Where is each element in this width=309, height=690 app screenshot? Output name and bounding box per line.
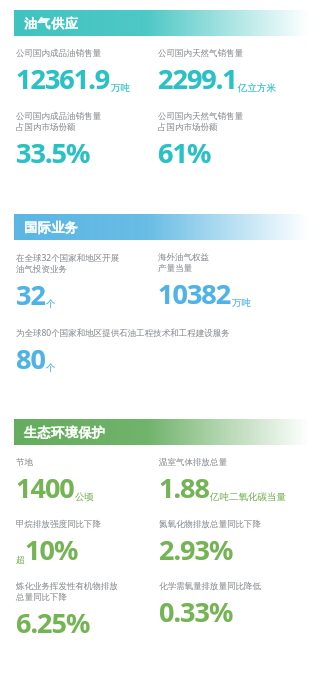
staticText: 1.88 xyxy=(159,469,209,506)
staticText: 2.93% xyxy=(159,531,233,568)
button[interactable]: 在全球32个国家和地区开展 xyxy=(16,252,120,313)
button[interactable]: 国际业务 xyxy=(14,214,309,240)
staticText: 甲烷排放强度同比下降 xyxy=(16,519,101,530)
staticText: 1400 xyxy=(16,469,74,506)
staticText: 超 xyxy=(16,554,25,565)
button[interactable]: 油气供应 xyxy=(14,10,309,36)
staticText: 节地 xyxy=(16,457,33,468)
staticText: 亿吨二氧化碳当量 xyxy=(210,491,286,503)
staticText: 10% xyxy=(25,531,78,568)
staticText: 万吨 xyxy=(111,82,130,94)
button[interactable]: 温室气体排放总量 xyxy=(159,457,286,506)
button[interactable]: 生态环境保护 xyxy=(14,419,309,445)
staticText: 氮氧化物排放总量同比下降 xyxy=(159,519,261,530)
button[interactable]: 公司国内成品油销售量 xyxy=(16,111,101,171)
button[interactable]: 炼化业务挥发性有机物排放 xyxy=(16,581,118,641)
staticText: 温室气体排放总量 xyxy=(159,457,227,468)
staticText: 6.25% xyxy=(16,604,90,641)
staticText: 公顷 xyxy=(75,491,94,503)
button[interactable]: 甲烷排放强度同比下降 xyxy=(16,519,101,568)
staticText: 61% xyxy=(158,134,211,171)
button[interactable]: 公司国内天然气销售量 xyxy=(158,48,276,97)
staticText: 亿立方米 xyxy=(238,82,276,94)
staticText: 为全球80个国家和地区提供石油工程技术和工程建设服务 xyxy=(16,327,230,339)
staticText: 化学需氧量排放量同比降低 xyxy=(159,581,261,592)
button[interactable]: 节地 xyxy=(16,457,94,506)
staticText: 个 xyxy=(46,362,56,374)
staticText: 个 xyxy=(46,298,56,310)
button[interactable]: 氮氧化物排放总量同比下降 xyxy=(159,519,261,568)
staticText: 公司国内成品油销售量 xyxy=(16,111,101,122)
staticText: 12361.9 xyxy=(16,60,110,97)
staticText: 生态环境保护 xyxy=(24,424,106,440)
staticText: 万吨 xyxy=(232,297,251,309)
staticText: 油气供应 xyxy=(24,15,79,31)
staticText: 在全球32个国家和地区开展 xyxy=(16,252,120,264)
staticText: 占国内市场份额 xyxy=(16,122,76,133)
staticText: 油气投资业务 xyxy=(16,264,67,275)
staticText: 2299.1 xyxy=(158,60,237,97)
button[interactable]: 公司国内成品油销售量 xyxy=(16,48,130,97)
staticText: 公司国内成品油销售量 xyxy=(16,48,101,59)
staticText: 33.5% xyxy=(16,134,90,171)
staticText: 海外油气权益 xyxy=(158,252,209,263)
staticText: 公司国内天然气销售量 xyxy=(158,111,243,122)
button[interactable]: 为全球80个国家和地区提供石油工程技术和工程建设服务 xyxy=(16,327,301,377)
staticText: 10382 xyxy=(158,275,231,312)
staticText: 占国内市场份额 xyxy=(158,122,218,133)
staticText: 32 xyxy=(16,276,45,313)
staticText: 国际业务 xyxy=(24,219,79,235)
button[interactable]: 化学需氧量排放量同比降低 xyxy=(159,581,261,630)
staticText: 80 xyxy=(16,340,45,377)
staticText: 总量同比下降 xyxy=(16,592,67,603)
staticText: 公司国内天然气销售量 xyxy=(158,48,243,59)
button[interactable]: 海外油气权益 xyxy=(158,252,251,312)
button[interactable]: 公司国内天然气销售量 xyxy=(158,111,243,171)
staticText: 炼化业务挥发性有机物排放 xyxy=(16,581,118,592)
staticText: 产量当量 xyxy=(158,263,192,274)
staticText: 0.33% xyxy=(159,593,233,630)
